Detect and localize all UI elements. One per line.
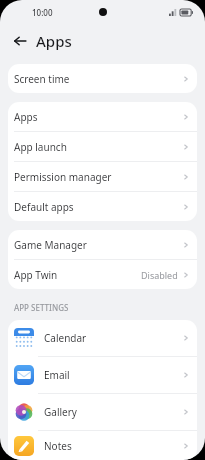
- staticText: Gallery: [44, 405, 182, 419]
- button[interactable]: Permission manager: [8, 162, 197, 191]
- button[interactable]: Back: [8, 29, 32, 53]
- staticText: Permission manager: [14, 170, 182, 184]
- staticText: Apps: [14, 110, 182, 124]
- staticText: Disabled: [141, 269, 178, 281]
- staticText: Apps: [36, 31, 72, 51]
- button[interactable]: Gallery: [8, 394, 197, 430]
- button[interactable]: Game Manager: [8, 230, 197, 259]
- button[interactable]: Screen time: [8, 64, 197, 93]
- staticText: Email: [44, 368, 182, 382]
- staticText: Calendar: [44, 331, 182, 345]
- button[interactable]: Apps: [8, 102, 197, 131]
- staticText: APP SETTINGS: [14, 302, 69, 313]
- button[interactable]: App launch: [8, 132, 197, 161]
- button[interactable]: Notes: [8, 431, 197, 460]
- staticText: App Twin: [14, 268, 141, 282]
- button[interactable]: App Twin: [8, 260, 197, 289]
- staticText: Default apps: [14, 200, 182, 214]
- staticText: 10:00: [32, 7, 53, 18]
- staticText: Notes: [44, 439, 182, 453]
- staticText: Screen time: [14, 72, 182, 86]
- button[interactable]: Email: [8, 357, 197, 393]
- staticText: Game Manager: [14, 238, 182, 252]
- button[interactable]: Calendar: [8, 320, 197, 356]
- button[interactable]: Default apps: [8, 192, 197, 221]
- staticText: App launch: [14, 140, 182, 154]
